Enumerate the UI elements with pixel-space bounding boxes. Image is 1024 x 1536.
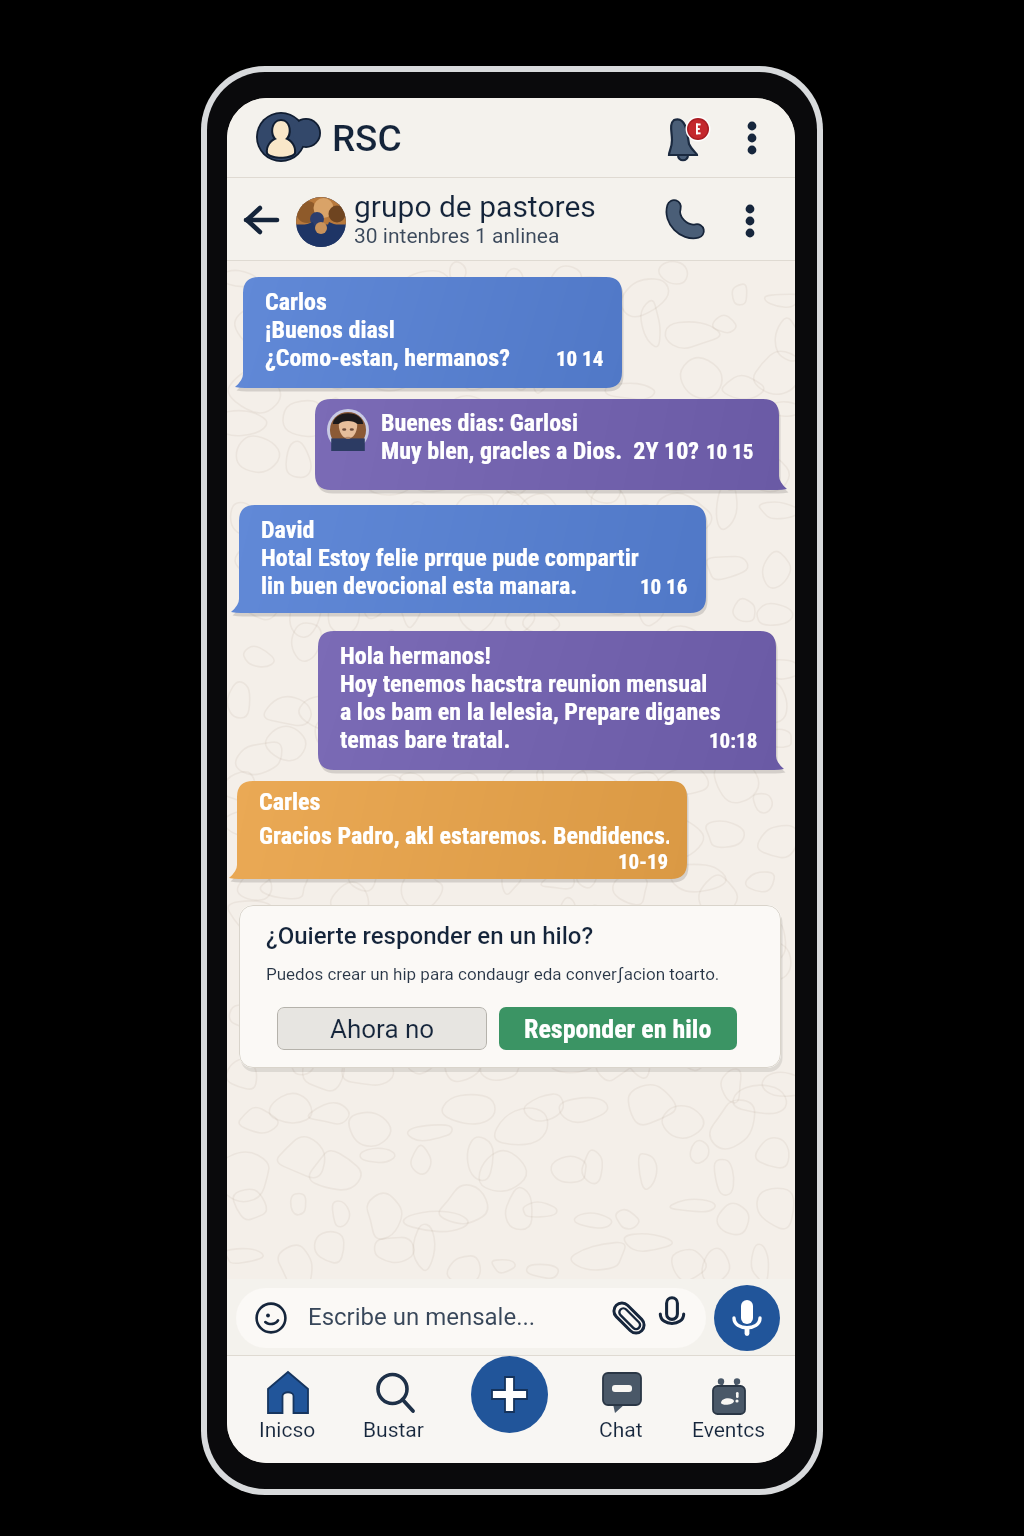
staticText: Buenes dias: Garlosi (381, 409, 579, 437)
staticText: Chat (599, 1418, 643, 1443)
staticText: grupo de pastores (354, 189, 596, 224)
button[interactable] (236, 1288, 706, 1348)
staticText: Eventcs (692, 1418, 766, 1443)
staticText: 10 15 (706, 440, 754, 465)
staticText: Bustar (363, 1418, 424, 1443)
staticText: David (261, 516, 315, 544)
staticText: Hoy tenemos hacstra reunion mensual (340, 670, 708, 698)
button[interactable]: Attach file (609, 1298, 649, 1338)
staticText: a los bam en la lelesia, Prepare diganes (340, 698, 721, 726)
button[interactable]: Notifications (655, 108, 711, 164)
button[interactable]: Record voice message (714, 1285, 780, 1351)
button[interactable]: Ahora no (277, 1007, 487, 1050)
staticText: RSC (332, 117, 402, 160)
staticText: Responder en hilo (524, 1014, 712, 1044)
staticText: temas bare tratal. (340, 726, 511, 754)
button[interactable]: Buenes dias: Garlosi (315, 399, 779, 490)
button[interactable]: Call (657, 190, 713, 246)
button[interactable]: Hola hermanos! (318, 631, 776, 770)
button[interactable]: Inicso (231, 1356, 344, 1463)
staticText: ¿Ouierte responder en un hilo? (266, 922, 594, 950)
staticText: Escribe un mensale... (308, 1303, 536, 1331)
staticText: Hola hermanos! (340, 642, 491, 670)
staticText: lin buen devocional esta manara. (261, 572, 578, 600)
staticText: 10-19 (618, 850, 669, 875)
staticText: 10 14 (556, 347, 604, 372)
button[interactable]: Create new (471, 1356, 548, 1433)
staticText: Muy blen, gracles a Dios. 2Y 10? (381, 437, 700, 465)
button[interactable]: More options (728, 199, 772, 243)
button[interactable]: Carlos (243, 277, 622, 388)
staticText: Carles (259, 788, 321, 816)
staticText: 10:18 (709, 729, 758, 754)
button[interactable]: David (239, 505, 706, 613)
button[interactable]: Chat (564, 1356, 677, 1463)
staticText: Gracios Padro, akl estaremos. Bendidencs… (259, 822, 669, 850)
staticText: 10 16 (640, 575, 688, 600)
button[interactable]: Bustar (337, 1356, 450, 1463)
staticText: Hotal Estoy felie prrque pude compartir (261, 544, 639, 572)
staticText: 30 intenbres 1 anlinea (354, 224, 560, 249)
button[interactable]: Eventcs (672, 1356, 785, 1463)
button[interactable]: Responder en hilo (499, 1007, 737, 1050)
staticText: Puedos crear un hip para condaugr eda co… (266, 964, 720, 984)
staticText: Ahora no (330, 1014, 435, 1044)
button[interactable]: More options (730, 116, 774, 160)
staticText: Carlos (265, 288, 327, 316)
button[interactable]: Carles (237, 781, 687, 879)
button[interactable]: Back (235, 194, 287, 246)
staticText: ¿Como-estan, hermanos? (265, 344, 510, 372)
staticText: ¡Buenos diasl (265, 316, 395, 344)
button[interactable]: Voice note (654, 1296, 690, 1332)
staticText: Inicso (259, 1418, 316, 1443)
